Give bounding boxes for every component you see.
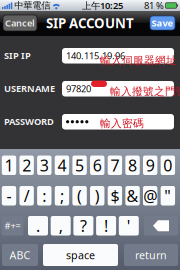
button[interactable]: 8	[125, 155, 140, 175]
staticText: !	[104, 215, 108, 236]
staticText: (	[77, 185, 82, 206]
button[interactable]: ;	[55, 186, 69, 205]
staticText: 4	[57, 155, 66, 176]
button[interactable]: !	[96, 216, 116, 235]
staticText: SIP ACCOUNT	[46, 14, 134, 32]
staticText: 輸入伺服器網址	[100, 54, 177, 67]
button[interactable]: 0	[161, 155, 175, 175]
button[interactable]: Delete	[144, 216, 178, 235]
staticText: "	[164, 185, 171, 206]
staticText: SIP IP	[4, 49, 31, 62]
button[interactable]: .	[28, 216, 48, 235]
staticText: 上午10:25	[82, 0, 123, 12]
button[interactable]: /	[19, 186, 34, 205]
staticText: USERNAME	[4, 82, 55, 95]
staticText: 輸入撥號之門號	[110, 85, 180, 98]
button[interactable]: :	[37, 186, 51, 205]
staticText: 140.115.19.96	[66, 50, 125, 62]
button[interactable]: #+=	[1, 216, 23, 235]
button[interactable]	[62, 114, 174, 129]
staticText: 81 %	[144, 0, 164, 12]
staticText: ABC	[9, 248, 30, 262]
staticText: Cancel	[5, 17, 35, 29]
staticText: space	[66, 248, 95, 262]
staticText: .	[36, 215, 40, 236]
button[interactable]: 7	[108, 155, 122, 175]
staticText: )	[95, 185, 100, 206]
button[interactable]: ABC	[2, 244, 38, 266]
staticText: 8	[128, 155, 137, 176]
staticText: 3	[40, 155, 49, 176]
button[interactable]: 2	[19, 155, 34, 175]
staticText: 2	[22, 155, 31, 176]
button[interactable]: 9	[143, 155, 157, 175]
button[interactable]: 3	[37, 155, 51, 175]
button[interactable]: )	[90, 186, 104, 205]
staticText: &	[126, 185, 138, 206]
staticText: ;	[60, 185, 64, 206]
staticText: 1	[4, 155, 13, 176]
staticText: 0	[163, 155, 172, 176]
button[interactable]: Save	[150, 16, 175, 30]
staticText: :	[42, 185, 46, 206]
staticText: #+=	[4, 220, 20, 232]
button[interactable]: ?	[73, 216, 93, 235]
button[interactable]: '	[119, 216, 139, 235]
button[interactable]: 4	[55, 155, 69, 175]
staticText: ?	[80, 215, 87, 236]
button[interactable]: @	[143, 186, 157, 205]
button[interactable]: 140.115.19.96	[62, 48, 174, 63]
button[interactable]: 5	[72, 155, 87, 175]
staticText: @	[143, 185, 157, 206]
staticText: 9	[146, 155, 155, 176]
button[interactable]: (	[72, 186, 87, 205]
button[interactable]: Cancel	[3, 15, 37, 31]
button[interactable]: 97820	[62, 81, 174, 96]
button[interactable]: 1	[2, 155, 16, 175]
staticText: 中華電信	[14, 0, 50, 11]
staticText: '	[127, 215, 131, 236]
staticText: -	[6, 185, 11, 206]
staticText: 7	[110, 155, 119, 176]
staticText: $	[110, 185, 119, 206]
staticText: ,	[59, 215, 63, 236]
staticText: PASSWORD	[4, 115, 54, 128]
staticText: /	[24, 185, 30, 206]
button[interactable]: "	[161, 186, 175, 205]
staticText: 6	[93, 155, 102, 176]
button[interactable]: space	[43, 244, 118, 266]
staticText: return	[135, 248, 167, 262]
staticText: Save	[151, 17, 173, 29]
staticText: 5	[75, 155, 84, 176]
staticText: 97820	[66, 83, 91, 95]
staticText: 輸入密碼	[100, 117, 144, 130]
button[interactable]: &	[125, 186, 140, 205]
button[interactable]: $	[108, 186, 122, 205]
button[interactable]: -	[2, 186, 16, 205]
button[interactable]: return	[124, 244, 178, 266]
button[interactable]: ,	[51, 216, 71, 235]
button[interactable]: 6	[90, 155, 104, 175]
